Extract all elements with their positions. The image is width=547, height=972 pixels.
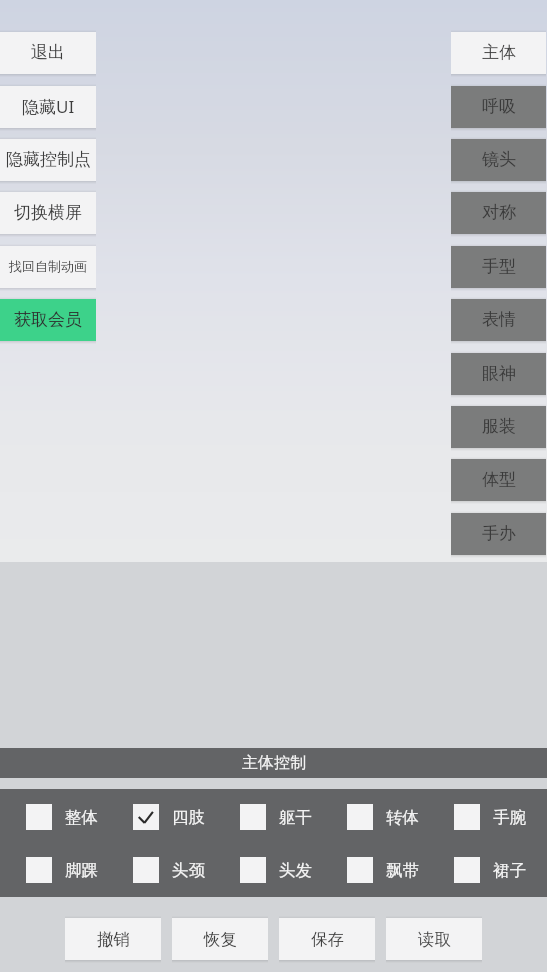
button[interactable]: 撤销 xyxy=(65,918,161,960)
button[interactable]: 手型 xyxy=(451,246,546,288)
button[interactable]: 获取会员 xyxy=(0,299,96,341)
button[interactable]: 恢复 xyxy=(172,918,268,960)
staticText: 手型 xyxy=(482,256,516,277)
button[interactable]: 隐藏控制点 xyxy=(0,139,96,181)
button[interactable]: 保存 xyxy=(279,918,375,960)
button[interactable]: 头颈 xyxy=(133,857,205,883)
button[interactable]: 表情 xyxy=(451,299,546,341)
staticText: 隐藏UI xyxy=(22,95,75,118)
staticText: 四肢 xyxy=(172,807,205,828)
staticText: 镜头 xyxy=(482,149,516,170)
button[interactable]: 整体 xyxy=(26,804,98,830)
button[interactable]: 镜头 xyxy=(451,139,546,181)
button[interactable]: 四肢 xyxy=(133,804,205,830)
button[interactable]: 主体 xyxy=(451,32,546,74)
button[interactable]: 头发 xyxy=(240,857,312,883)
button[interactable]: 飘带 xyxy=(347,857,419,883)
staticText: 恢复 xyxy=(204,929,237,950)
staticText: 主体控制 xyxy=(242,753,306,773)
button[interactable]: 呼吸 xyxy=(451,86,546,128)
button[interactable]: 切换横屏 xyxy=(0,192,96,234)
staticText: 脚踝 xyxy=(65,860,98,881)
staticText: 转体 xyxy=(386,807,419,828)
staticText: 获取会员 xyxy=(14,309,82,330)
button[interactable]: 裙子 xyxy=(454,857,526,883)
staticText: 躯干 xyxy=(279,807,312,828)
button[interactable]: 眼神 xyxy=(451,353,546,395)
staticText: 退出 xyxy=(31,42,65,63)
button[interactable]: 体型 xyxy=(451,459,546,501)
button[interactable]: 隐藏UI xyxy=(0,86,96,128)
staticText: 头发 xyxy=(279,860,312,881)
staticText: 整体 xyxy=(65,807,98,828)
staticText: 对称 xyxy=(482,202,516,223)
staticText: 主体 xyxy=(482,42,516,63)
staticText: 裙子 xyxy=(493,860,526,881)
button[interactable]: 对称 xyxy=(451,192,546,234)
staticText: 飘带 xyxy=(386,860,419,881)
button[interactable]: 手腕 xyxy=(454,804,526,830)
button[interactable]: 读取 xyxy=(386,918,482,960)
button[interactable]: 手办 xyxy=(451,513,546,555)
staticText: 隐藏控制点 xyxy=(6,149,91,170)
staticText: 手办 xyxy=(482,523,516,544)
staticText: 切换横屏 xyxy=(14,202,82,223)
staticText: 表情 xyxy=(482,309,516,330)
button[interactable]: 躯干 xyxy=(240,804,312,830)
button[interactable]: 脚踝 xyxy=(26,857,98,883)
staticText: 手腕 xyxy=(493,807,526,828)
button[interactable]: 转体 xyxy=(347,804,419,830)
staticText: 撤销 xyxy=(97,929,130,950)
staticText: 服装 xyxy=(482,416,516,437)
staticText: 读取 xyxy=(418,929,451,950)
button[interactable]: 找回自制动画 xyxy=(0,246,96,288)
staticText: 眼神 xyxy=(482,363,516,384)
staticText: 找回自制动画 xyxy=(9,258,87,274)
staticText: 头颈 xyxy=(172,860,205,881)
button[interactable]: 主体控制 xyxy=(0,748,547,778)
staticText: 呼吸 xyxy=(482,96,516,117)
button[interactable]: 退出 xyxy=(0,32,96,74)
staticText: 保存 xyxy=(311,929,344,950)
button[interactable]: 服装 xyxy=(451,406,546,448)
staticText: 体型 xyxy=(482,469,516,490)
